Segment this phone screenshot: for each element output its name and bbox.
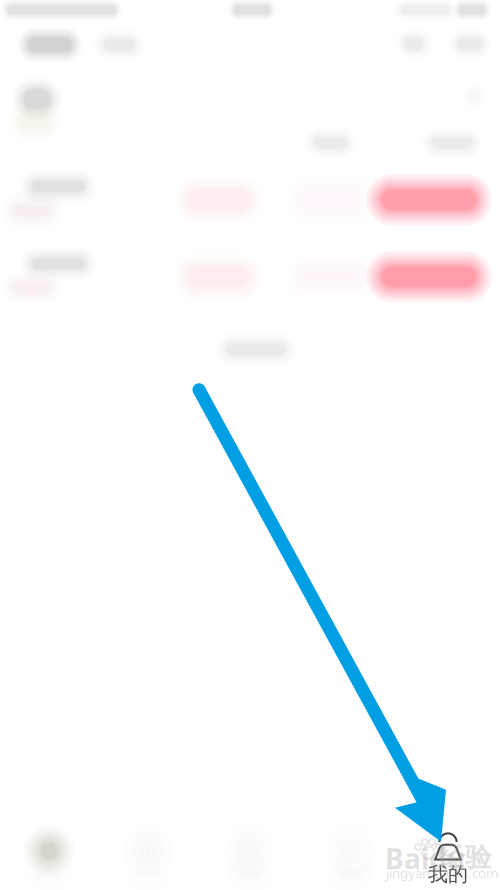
- staticText: jingyan.baidu.com: [386, 864, 498, 882]
- staticText: 我的: [428, 862, 468, 887]
- staticText: Baidu: [385, 840, 465, 877]
- button[interactable]: 我的: [405, 833, 491, 885]
- staticText: 经验: [438, 841, 492, 874]
